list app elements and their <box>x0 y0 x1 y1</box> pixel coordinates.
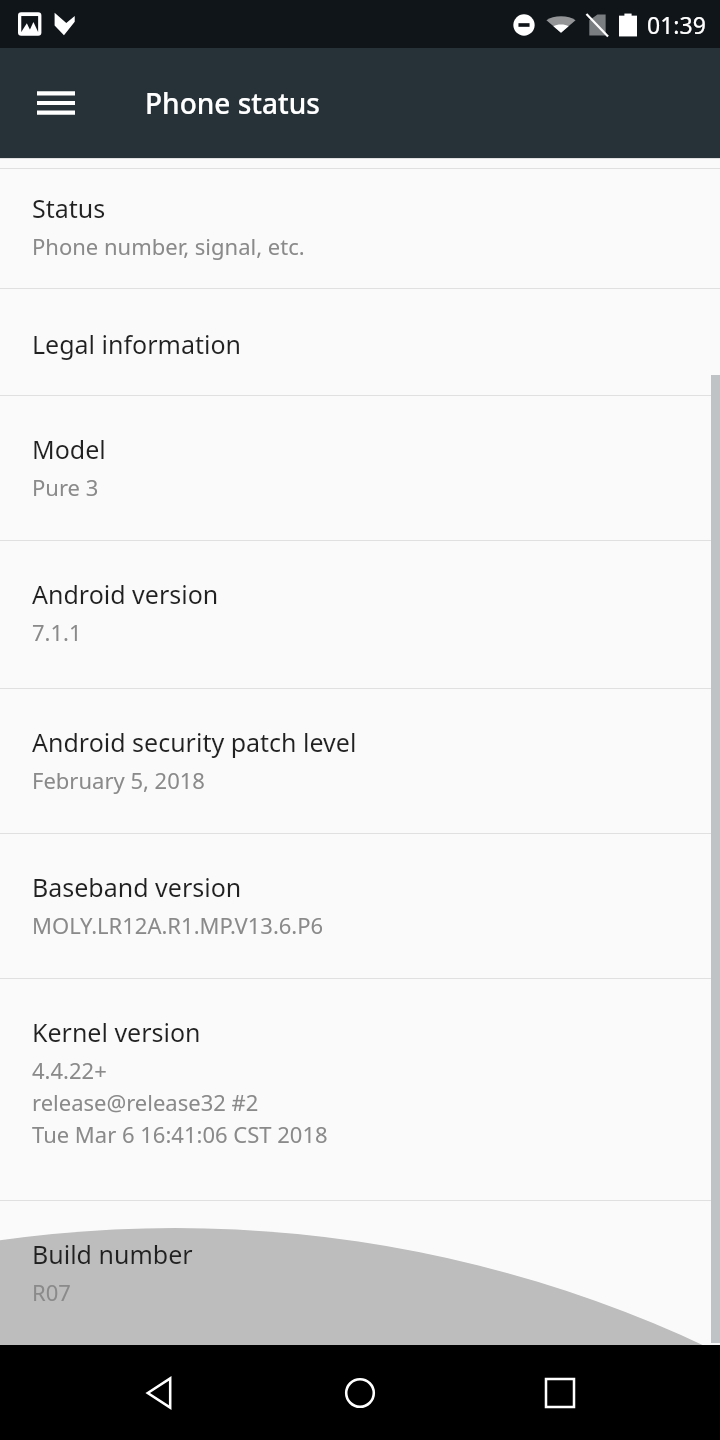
button[interactable]: Status <box>0 169 720 288</box>
staticText: MOLY.LR12A.R1.MP.V13.6.P6 <box>32 910 324 940</box>
staticText: 01:39 <box>647 9 706 40</box>
button[interactable]: Kernel version <box>0 979 720 1200</box>
staticText: Android security patch level <box>32 725 357 759</box>
staticText: Kernel version <box>32 1015 201 1049</box>
staticText: Legal information <box>32 327 241 361</box>
staticText: Tue Mar 6 16:41:06 CST 2018 <box>32 1119 328 1149</box>
staticText: Status <box>32 191 106 225</box>
button[interactable]: Legal information <box>0 289 720 395</box>
staticText: R07 <box>32 1277 71 1307</box>
staticText: Build number <box>32 1237 193 1271</box>
button[interactable]: Model <box>0 396 720 540</box>
button[interactable]: Open navigation menu <box>20 67 92 139</box>
staticText: 7.1.1 <box>32 617 82 647</box>
staticText: Android version <box>32 577 219 611</box>
button[interactable]: Android security patch level <box>0 689 720 833</box>
staticText: 4.4.22+ <box>32 1055 107 1085</box>
button[interactable]: Back <box>120 1353 200 1433</box>
staticText: release@release32 #2 <box>32 1087 259 1117</box>
staticText: Model <box>32 432 106 466</box>
staticText: Phone number, signal, etc. <box>32 231 305 261</box>
button[interactable]: Recent apps <box>520 1353 600 1433</box>
button[interactable]: Build number <box>0 1201 720 1345</box>
staticText: Pure 3 <box>32 472 99 502</box>
button[interactable]: Baseband version <box>0 834 720 978</box>
staticText: Baseband version <box>32 870 242 904</box>
button[interactable]: Android version <box>0 541 720 688</box>
staticText: February 5, 2018 <box>32 765 205 795</box>
staticText: Phone status <box>145 84 320 122</box>
button[interactable]: Home <box>320 1353 400 1433</box>
